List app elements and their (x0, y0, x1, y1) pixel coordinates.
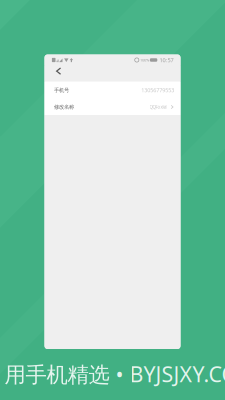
staticText: QQFoxlel (150, 104, 167, 110)
staticText: 13056779553 (141, 86, 174, 94)
button[interactable]: 修改名称 (44, 99, 180, 115)
staticText: 100% (140, 57, 149, 63)
staticText: 用手机精选 • BYJSJXY.COM (4, 360, 225, 388)
staticText: 修改名称 (54, 104, 74, 110)
staticText: 10:57 (159, 56, 173, 64)
staticText: 手机号 (54, 87, 69, 94)
button[interactable]: Back (44, 65, 67, 81)
